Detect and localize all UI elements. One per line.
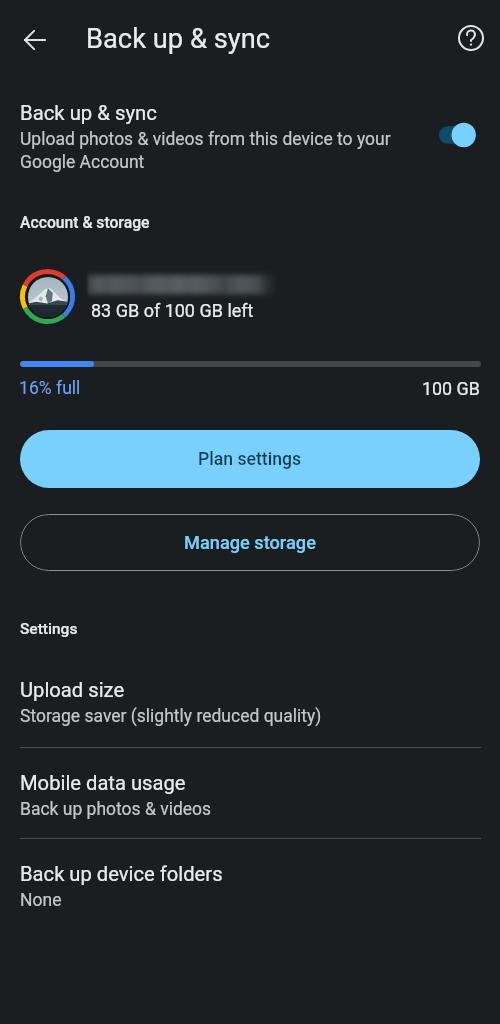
button[interactable]: Plan settings xyxy=(20,430,480,488)
staticText: Back up photos & videos xyxy=(20,799,212,820)
button[interactable]: Back up device folders xyxy=(0,839,500,933)
staticText: Back up & sync xyxy=(86,23,271,55)
staticText: 16% full xyxy=(19,378,81,399)
button[interactable]: Back up & sync xyxy=(0,93,500,182)
staticText: None xyxy=(20,890,62,911)
button[interactable]: Upload size xyxy=(0,655,500,749)
staticText: Account & storage xyxy=(20,213,150,231)
staticText: 83 GB of 100 GB left xyxy=(91,300,254,321)
staticText: Mobile data usage xyxy=(20,771,186,795)
button[interactable]: Manage storage xyxy=(20,514,480,571)
staticText: Back up device folders xyxy=(20,862,223,886)
button[interactable]: Mobile data usage xyxy=(0,748,500,842)
staticText: Upload photos & videos from this device … xyxy=(20,129,418,172)
button[interactable]: Help xyxy=(448,15,494,61)
staticText: Settings xyxy=(20,620,78,638)
staticText: Storage saver (slightly reduced quality) xyxy=(20,706,322,727)
staticText: Plan settings xyxy=(198,449,302,470)
staticText: Manage storage xyxy=(184,532,316,553)
staticText: 100 GB xyxy=(422,378,480,399)
staticText: Back up & sync xyxy=(20,101,157,125)
button[interactable]: Back up and sync toggle xyxy=(430,118,482,152)
button[interactable]: Back xyxy=(12,17,58,63)
staticText: Upload size xyxy=(20,678,125,702)
